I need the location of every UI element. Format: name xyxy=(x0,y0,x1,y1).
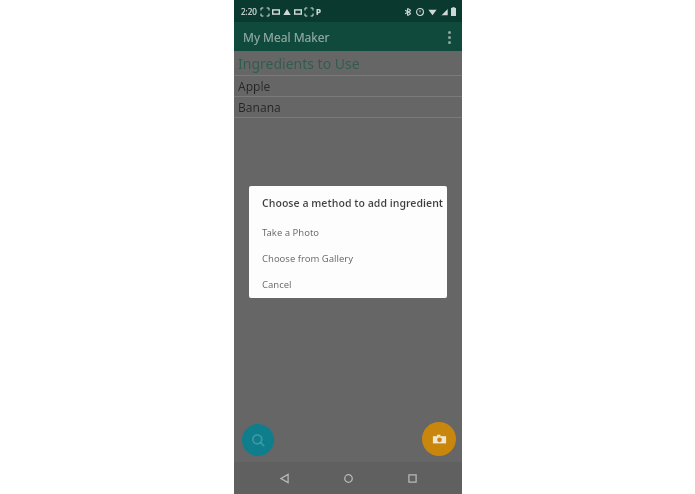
button[interactable]: Recent apps xyxy=(398,464,426,492)
button[interactable]: Banana xyxy=(234,97,462,117)
staticText: My Meal Maker xyxy=(243,29,330,45)
staticText: Ingredients to Use xyxy=(238,54,360,73)
button[interactable]: Choose from Gallery xyxy=(249,245,447,271)
staticText: Banana xyxy=(238,99,281,115)
staticText: Choose from Gallery xyxy=(262,252,354,265)
staticText: Choose a method to add ingredient xyxy=(262,196,444,210)
button[interactable]: More options xyxy=(436,24,462,50)
button[interactable]: Cancel xyxy=(249,271,447,297)
staticText: Apple xyxy=(238,78,271,94)
staticText: Cancel xyxy=(262,278,292,291)
button[interactable]: Home xyxy=(334,464,362,492)
staticText: P xyxy=(316,6,321,17)
button[interactable]: Apple xyxy=(234,76,462,96)
staticText: Take a Photo xyxy=(262,226,320,239)
button[interactable]: Add ingredient with camera xyxy=(422,422,456,456)
button[interactable]: Take a Photo xyxy=(249,219,447,245)
button[interactable]: Find recipes xyxy=(242,424,274,456)
staticText: 2:20 xyxy=(241,6,257,17)
button[interactable]: Back xyxy=(270,464,298,492)
